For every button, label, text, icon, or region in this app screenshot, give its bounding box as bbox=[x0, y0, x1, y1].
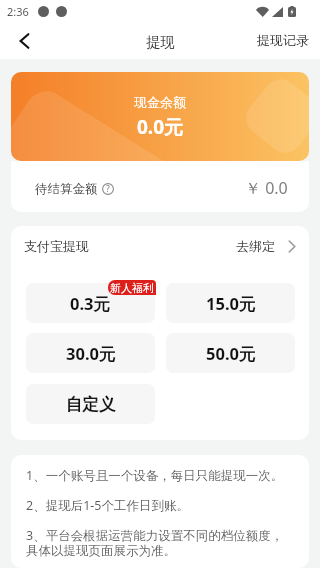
button[interactable]: 自定义 bbox=[26, 384, 155, 424]
button[interactable]: 支付宝提现 bbox=[11, 226, 309, 266]
button[interactable]: 0.3元 bbox=[26, 283, 155, 323]
button[interactable]: Back bbox=[6, 23, 42, 59]
staticText: 提现记录 bbox=[257, 32, 309, 48]
button[interactable]: 50.0元 bbox=[166, 333, 295, 373]
staticText: 提现 bbox=[146, 33, 175, 51]
staticText: 自定义 bbox=[66, 394, 116, 415]
staticText: 去绑定 bbox=[236, 238, 275, 254]
button[interactable]: 30.0元 bbox=[26, 333, 155, 373]
staticText: 现金余额 bbox=[134, 94, 186, 110]
button[interactable]: 待结算金额 bbox=[11, 161, 309, 212]
staticText: ￥ 0.0 bbox=[245, 177, 288, 199]
button[interactable]: 提现记录 bbox=[246, 22, 320, 58]
staticText: 待结算金额 bbox=[35, 181, 98, 197]
staticText: 3、平台会根据运营能力设置不同的档位额度，具体以提现页面展示为准。 bbox=[26, 527, 289, 559]
staticText: 新人福利 bbox=[110, 281, 154, 295]
staticText: 2:36 bbox=[7, 4, 29, 19]
button[interactable]: 15.0元 bbox=[166, 283, 295, 323]
staticText: 30.0元 bbox=[66, 342, 116, 365]
staticText: 15.0元 bbox=[206, 292, 256, 315]
staticText: ? bbox=[106, 183, 110, 195]
staticText: 支付宝提现 bbox=[24, 238, 89, 254]
staticText: 50.0元 bbox=[206, 342, 256, 365]
staticText: 0.0元 bbox=[137, 114, 184, 140]
staticText: 2、提现后1-5个工作日到账。 bbox=[26, 497, 189, 514]
staticText: 1、一个账号且一个设备，每日只能提现一次。 bbox=[26, 467, 284, 484]
staticText: 0.3元 bbox=[70, 292, 111, 315]
